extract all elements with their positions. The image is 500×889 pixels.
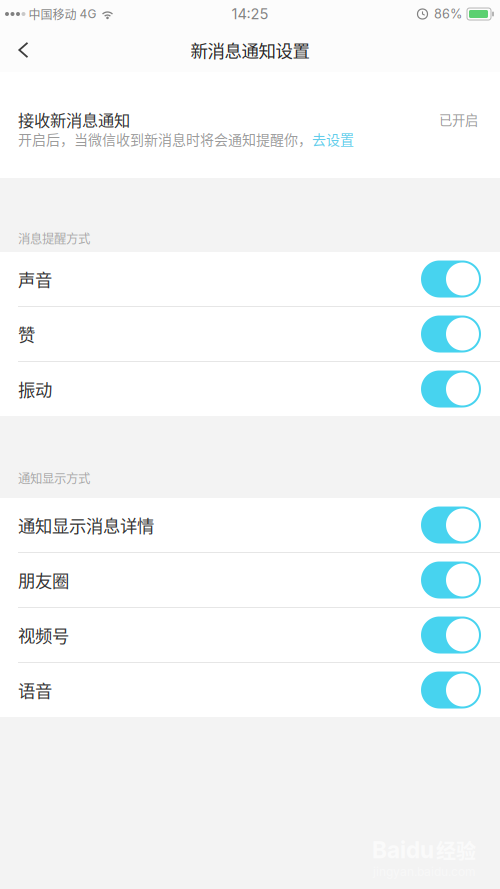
staticText: 语音 xyxy=(18,677,52,703)
staticText: 新消息通知设置 xyxy=(190,37,309,63)
staticText: 86% xyxy=(434,6,462,22)
staticText: 接收新消息通知 xyxy=(18,108,130,131)
button[interactable]: 声音 xyxy=(0,252,500,306)
staticText: 4G xyxy=(76,7,96,21)
button[interactable]: Toggle xyxy=(421,671,481,708)
button[interactable]: Toggle xyxy=(421,370,481,407)
staticText: 赞 xyxy=(18,321,35,347)
staticText: 14:25 xyxy=(231,5,268,23)
staticText: 朋友圈 xyxy=(18,567,69,593)
button[interactable]: 视频号 xyxy=(0,608,500,662)
button[interactable]: 振动 xyxy=(0,362,500,416)
button[interactable]: Toggle xyxy=(421,260,481,297)
staticText: 中国移动 xyxy=(25,5,76,23)
staticText: 已开启 xyxy=(439,110,478,129)
button[interactable]: 语音 xyxy=(0,663,500,717)
staticText: 视频号 xyxy=(18,622,69,648)
button[interactable]: 赞 xyxy=(0,307,500,361)
staticText: 通知显示方式 xyxy=(18,469,90,487)
staticText: 振动 xyxy=(18,376,52,402)
staticText: 声音 xyxy=(18,266,52,292)
staticText: 消息提醒方式 xyxy=(18,229,90,247)
button[interactable]: Toggle xyxy=(421,561,481,598)
staticText: 去设置 xyxy=(312,129,354,149)
staticText: 通知显示消息详情 xyxy=(18,512,154,538)
button[interactable]: Back xyxy=(0,28,47,72)
staticText: 开启后，当微信收到新消息时将会通知提醒你， xyxy=(18,129,312,149)
button[interactable]: Toggle xyxy=(421,506,481,543)
button[interactable]: 朋友圈 xyxy=(0,553,500,607)
button[interactable]: 接收新消息通知 xyxy=(0,72,500,178)
button[interactable]: Toggle xyxy=(421,616,481,653)
button[interactable]: Toggle xyxy=(421,315,481,352)
button[interactable]: 通知显示消息详情 xyxy=(0,498,500,552)
